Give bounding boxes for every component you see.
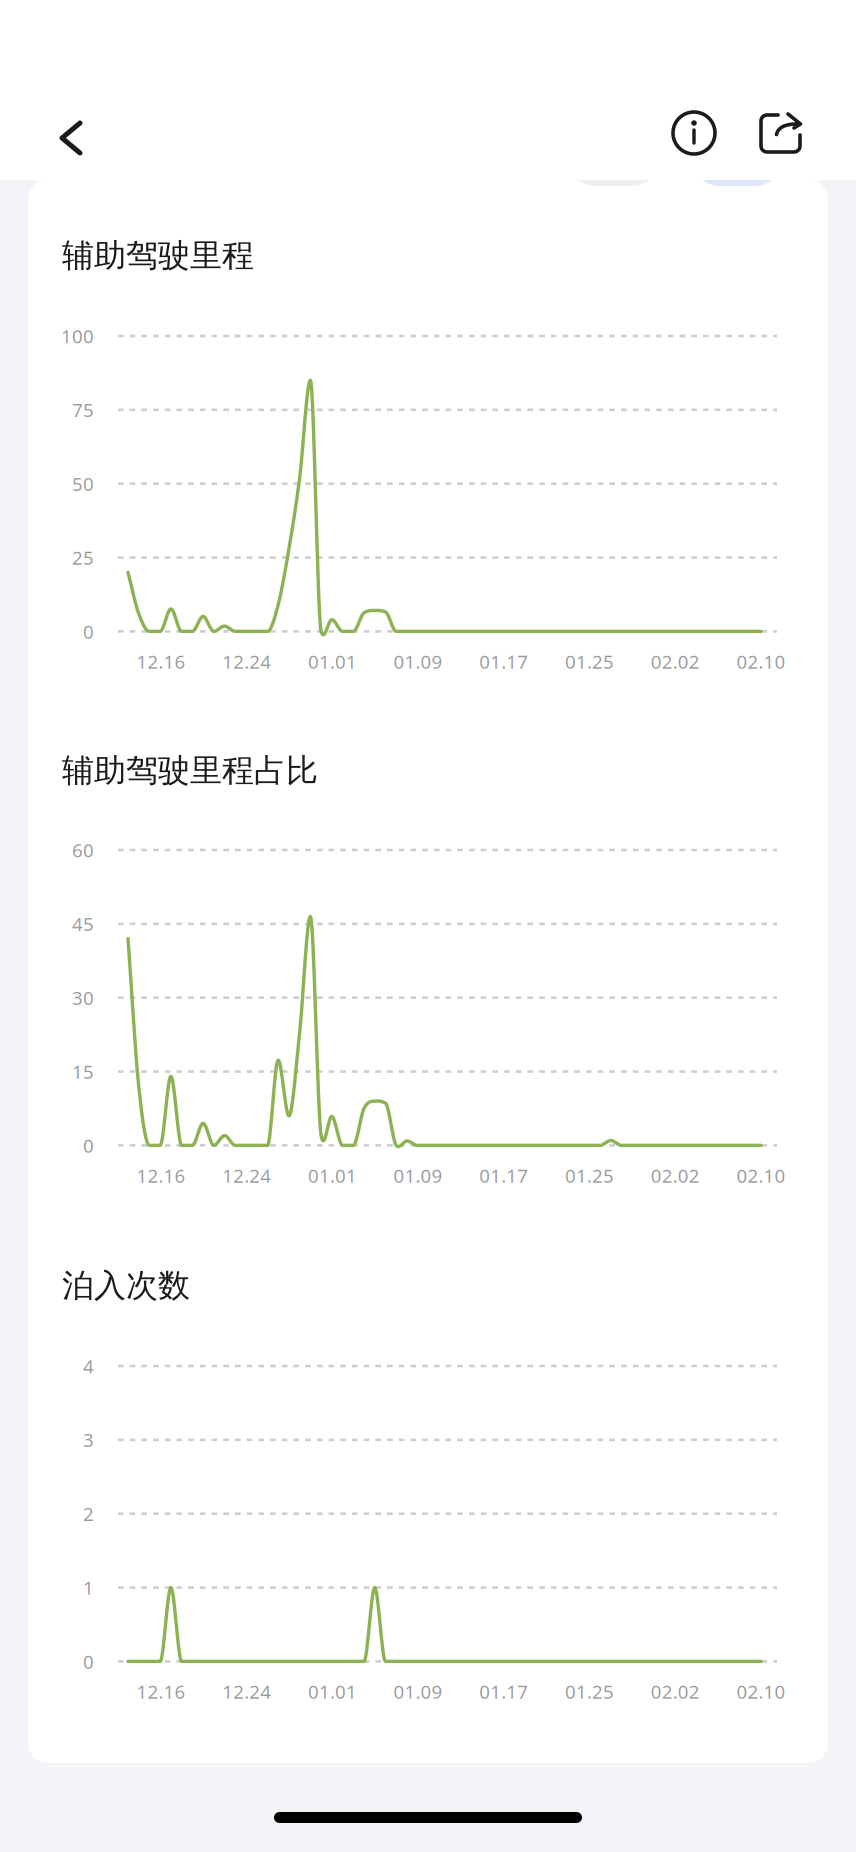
staticText: 01.25 xyxy=(565,649,614,674)
staticText: 12.24 xyxy=(222,649,271,674)
staticText: 02.10 xyxy=(736,649,785,674)
staticText: 12.24 xyxy=(222,1679,271,1704)
staticText: 25 xyxy=(72,545,94,570)
staticText: 0 xyxy=(83,1133,94,1158)
staticText: 4 xyxy=(83,1354,94,1378)
staticText: 01.25 xyxy=(565,1163,614,1188)
staticText: 12.16 xyxy=(136,1163,185,1188)
staticText: 12.16 xyxy=(136,1679,185,1704)
staticText: 2 xyxy=(83,1501,94,1526)
staticText: 泊入次数 xyxy=(62,1266,190,1305)
staticText: 02.02 xyxy=(651,1163,700,1188)
staticText: 01.09 xyxy=(394,649,443,674)
staticText: 0 xyxy=(83,1649,94,1674)
staticText: 辅助驾驶里程占比 xyxy=(62,751,318,790)
staticText: 01.01 xyxy=(308,1679,357,1704)
staticText: 75 xyxy=(72,397,94,422)
staticText: 12.16 xyxy=(136,649,185,674)
staticText: 01.17 xyxy=(479,1163,528,1188)
staticText: 02.02 xyxy=(651,649,700,674)
staticText: 01.01 xyxy=(308,1163,357,1188)
staticText: 50 xyxy=(72,471,94,496)
staticText: 0 xyxy=(83,619,94,644)
staticText: 02.10 xyxy=(736,1679,785,1704)
staticText: 30 xyxy=(72,985,94,1010)
button[interactable]: Share xyxy=(739,92,823,176)
staticText: 60 xyxy=(72,838,94,862)
staticText: 01.09 xyxy=(394,1679,443,1704)
staticText: 45 xyxy=(72,911,94,936)
staticText: 02.02 xyxy=(651,1679,700,1704)
staticText: 01.17 xyxy=(479,649,528,674)
staticText: 100 xyxy=(61,324,94,348)
staticText: 辅助驾驶里程 xyxy=(62,236,254,275)
staticText: 3 xyxy=(83,1427,94,1452)
button[interactable]: Back xyxy=(29,96,113,180)
staticText: 01.17 xyxy=(479,1679,528,1704)
staticText: 02.10 xyxy=(736,1163,785,1188)
staticText: 01.25 xyxy=(565,1679,614,1704)
staticText: 15 xyxy=(72,1059,94,1084)
staticText: 1 xyxy=(83,1575,94,1600)
staticText: 01.01 xyxy=(308,649,357,674)
staticText: 01.09 xyxy=(394,1163,443,1188)
staticText: 12.24 xyxy=(222,1163,271,1188)
button[interactable]: Info xyxy=(652,91,736,175)
